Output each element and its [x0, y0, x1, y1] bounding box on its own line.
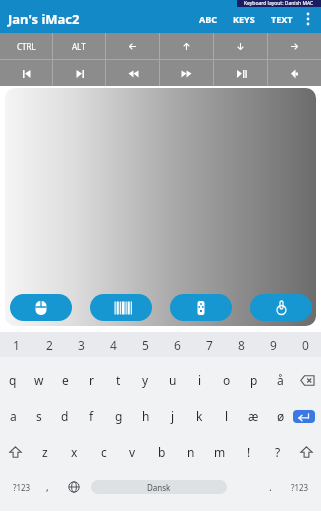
button[interactable]: Dansk: [91, 480, 227, 494]
button[interactable]: [0, 433, 30, 471]
staticText: 4: [110, 337, 117, 353]
button[interactable]: [294, 361, 321, 399]
button[interactable]: r: [78, 361, 105, 399]
button[interactable]: [0, 60, 52, 86]
staticText: h: [142, 408, 150, 424]
staticText: æ: [248, 408, 259, 424]
button[interactable]: x: [60, 433, 89, 471]
button[interactable]: y: [132, 361, 159, 399]
button[interactable]: 2: [33, 332, 65, 357]
staticText: CTRL: [17, 41, 36, 52]
button[interactable]: .: [260, 471, 280, 503]
button[interactable]: [160, 33, 213, 59]
staticText: e: [62, 372, 69, 388]
staticText: 5: [142, 337, 149, 353]
button[interactable]: [301, 12, 315, 26]
button[interactable]: ABC: [191, 9, 225, 29]
button[interactable]: w: [26, 361, 52, 399]
button[interactable]: [10, 294, 72, 321]
button[interactable]: z: [30, 433, 60, 471]
staticText: 7: [206, 337, 213, 353]
staticText: s: [36, 408, 42, 424]
staticText: 0: [302, 337, 309, 353]
button[interactable]: [170, 294, 232, 321]
button[interactable]: 6: [161, 332, 193, 357]
staticText: r: [89, 372, 94, 388]
button[interactable]: v: [118, 433, 147, 471]
button[interactable]: ,: [38, 471, 56, 503]
staticText: 2: [46, 337, 53, 353]
button[interactable]: m: [205, 433, 234, 471]
button[interactable]: n: [176, 433, 205, 471]
button[interactable]: !: [234, 433, 263, 471]
button[interactable]: [90, 294, 152, 321]
staticText: j: [171, 408, 175, 424]
button[interactable]: [62, 471, 86, 503]
button[interactable]: o: [213, 361, 240, 399]
button[interactable]: b: [147, 433, 176, 471]
staticText: 6: [174, 337, 181, 353]
staticText: t: [116, 372, 121, 388]
button[interactable]: 3: [65, 332, 97, 357]
button[interactable]: ?123: [282, 471, 318, 503]
button[interactable]: 9: [257, 332, 289, 357]
button[interactable]: 0: [289, 332, 321, 357]
staticText: KEYS: [233, 13, 255, 25]
button[interactable]: c: [89, 433, 118, 471]
button[interactable]: [292, 433, 321, 471]
button[interactable]: e: [52, 361, 78, 399]
button[interactable]: l: [213, 397, 240, 435]
button[interactable]: å: [267, 361, 294, 399]
button[interactable]: g: [105, 397, 132, 435]
button[interactable]: ?: [263, 433, 292, 471]
staticText: n: [187, 444, 195, 460]
button[interactable]: a: [0, 397, 26, 435]
staticText: i: [198, 372, 202, 388]
staticText: o: [223, 372, 231, 388]
button[interactable]: 1: [0, 332, 33, 357]
button[interactable]: [214, 33, 267, 59]
button[interactable]: KEYS: [225, 9, 263, 29]
staticText: Dansk: [147, 482, 171, 493]
staticText: f: [89, 408, 94, 424]
staticText: q: [9, 372, 17, 388]
button[interactable]: u: [159, 361, 186, 399]
button[interactable]: ALT: [53, 33, 105, 59]
button[interactable]: j: [159, 397, 186, 435]
button[interactable]: [268, 33, 321, 59]
button[interactable]: d: [52, 397, 78, 435]
button[interactable]: [268, 60, 321, 86]
button[interactable]: h: [132, 397, 159, 435]
button[interactable]: æ: [240, 397, 267, 435]
button[interactable]: [214, 60, 267, 86]
staticText: å: [277, 372, 284, 388]
button[interactable]: TEXT: [263, 9, 301, 29]
button[interactable]: k: [186, 397, 213, 435]
button[interactable]: p: [240, 361, 267, 399]
button[interactable]: q: [0, 361, 26, 399]
button[interactable]: [250, 294, 312, 321]
button[interactable]: i: [186, 361, 213, 399]
button[interactable]: [106, 60, 159, 86]
staticText: u: [169, 372, 177, 388]
button[interactable]: [106, 33, 159, 59]
button[interactable]: [53, 60, 105, 86]
button[interactable]: 4: [97, 332, 129, 357]
button[interactable]: [294, 397, 321, 435]
button[interactable]: t: [105, 361, 132, 399]
button[interactable]: 5: [129, 332, 161, 357]
staticText: w: [34, 372, 44, 388]
button[interactable]: CTRL: [0, 33, 52, 59]
button[interactable]: 8: [225, 332, 257, 357]
button[interactable]: ø: [267, 397, 294, 435]
button[interactable]: ?123: [4, 471, 40, 503]
button[interactable]: [160, 60, 213, 86]
staticText: !: [247, 444, 251, 460]
button[interactable]: 7: [193, 332, 225, 357]
staticText: 3: [78, 337, 85, 353]
staticText: ?123: [13, 482, 31, 493]
button[interactable]: [5, 88, 316, 326]
staticText: v: [129, 444, 136, 460]
button[interactable]: s: [26, 397, 52, 435]
button[interactable]: f: [78, 397, 105, 435]
